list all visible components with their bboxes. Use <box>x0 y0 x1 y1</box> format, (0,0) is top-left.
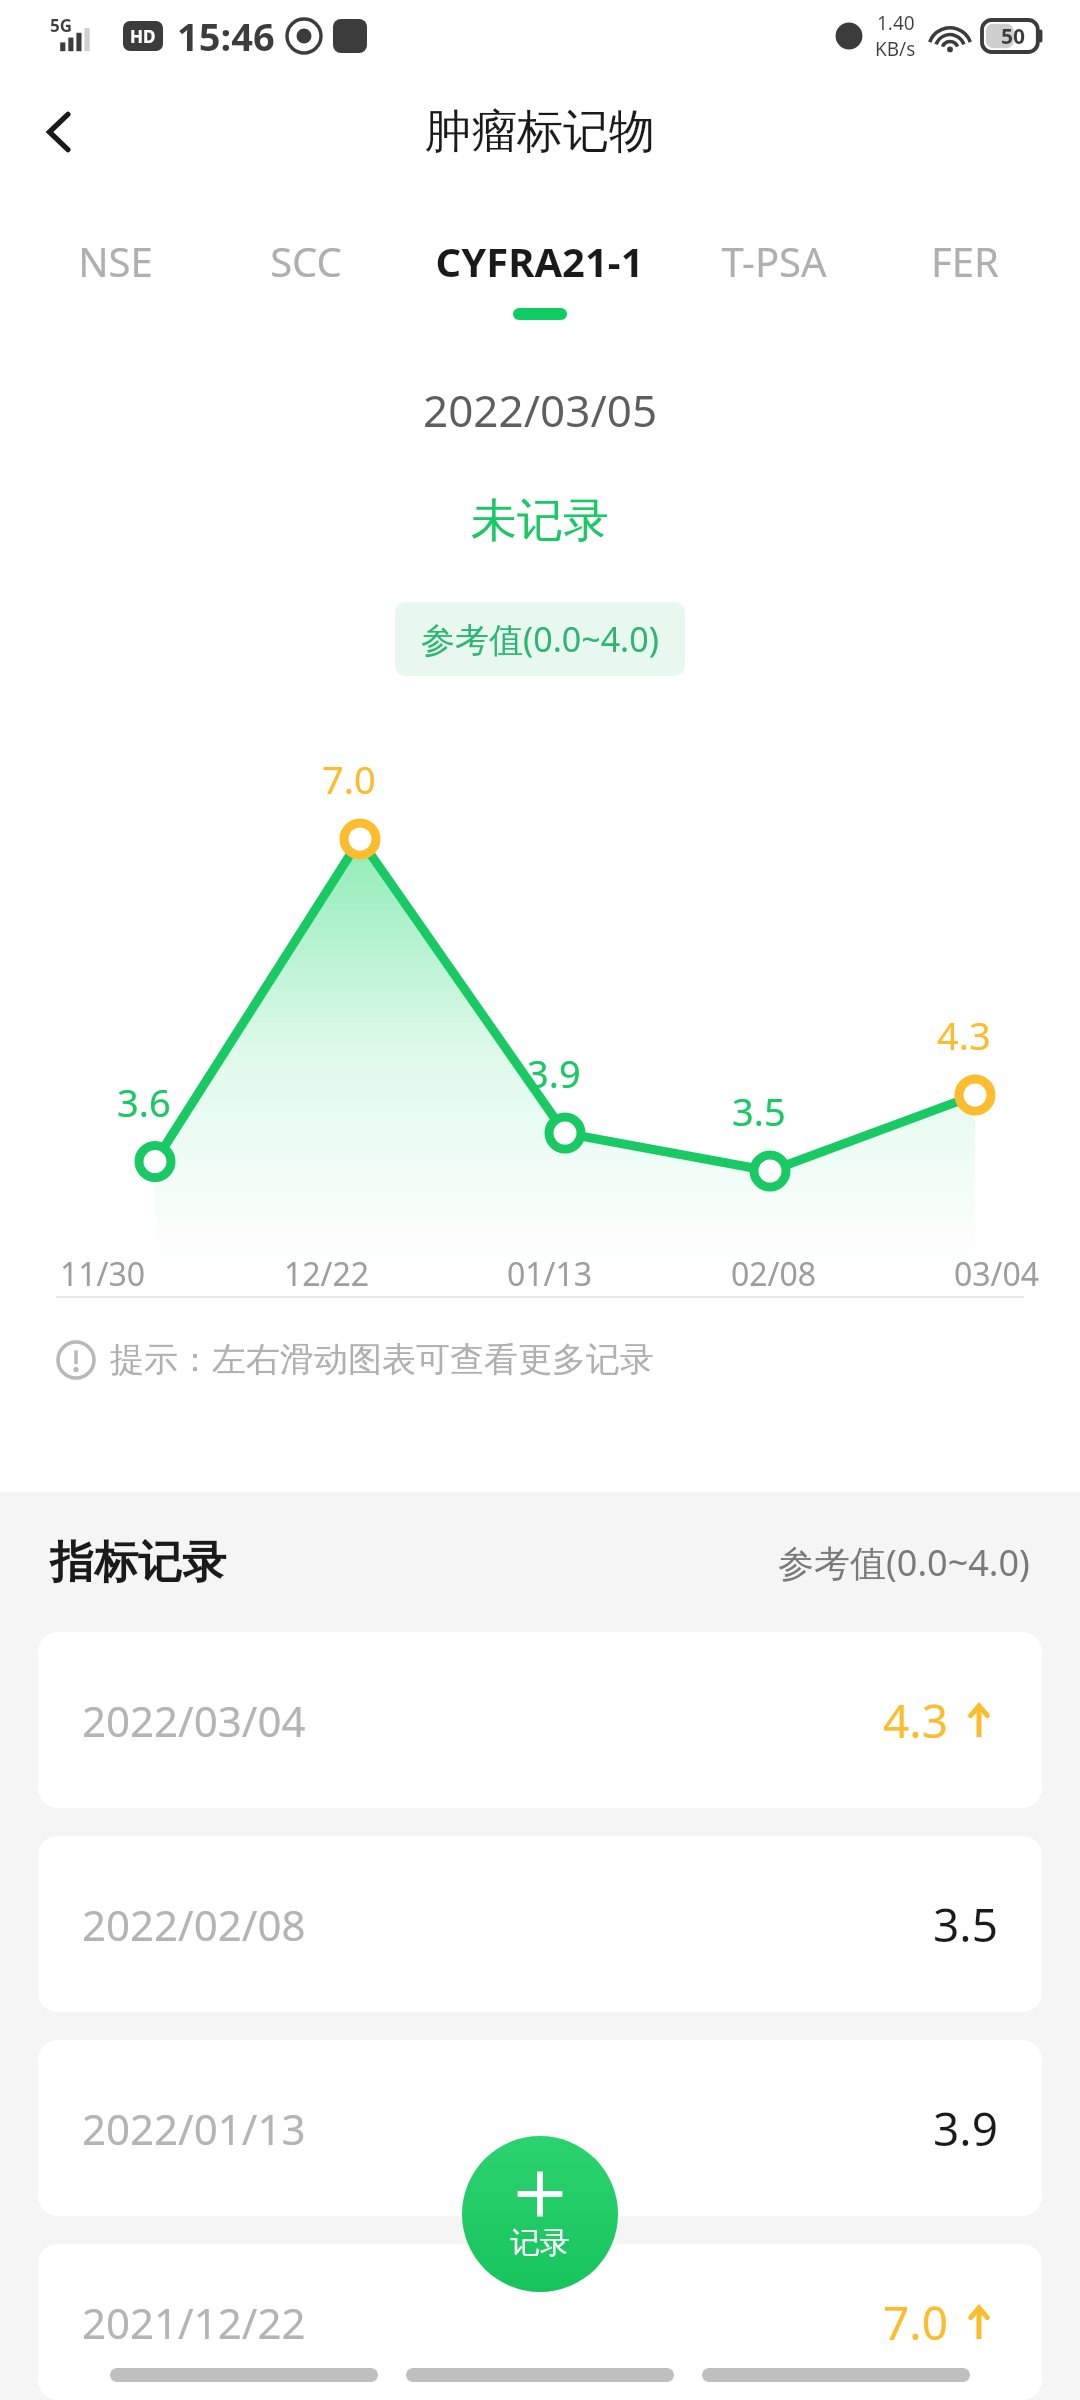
staticText: 提示：左右滑动图表可查看更多记录 <box>110 1338 654 1381</box>
staticText: 记录 <box>510 2224 570 2262</box>
staticText: KB/s <box>875 36 916 62</box>
staticText: 2022/02/08 <box>82 1896 306 1953</box>
staticText: SCC <box>270 234 342 288</box>
staticText: 2022/01/13 <box>82 2100 306 2157</box>
staticText: 03/04 <box>954 1252 1040 1296</box>
button[interactable]: T-PSA <box>678 192 869 332</box>
staticText: 3.5 <box>732 1085 786 1137</box>
button[interactable]: Back <box>0 72 120 192</box>
staticText: 指标记录 <box>50 1535 226 1590</box>
staticText: 12/22 <box>284 1252 370 1296</box>
button[interactable]: Navigation <box>110 2368 378 2382</box>
staticText: 2022/03/04 <box>82 1692 306 1749</box>
button[interactable]: CYFRA21-1 <box>401 192 678 332</box>
button[interactable]: 2022/03/04 <box>38 1632 1042 1808</box>
button[interactable]: NSE <box>20 192 210 332</box>
staticText: 2022/03/05 <box>423 380 658 440</box>
button[interactable]: SCC <box>210 192 401 332</box>
staticText: 02/08 <box>731 1252 817 1296</box>
staticText: 3.9 <box>527 1047 581 1099</box>
button[interactable]: 添加记录 <box>462 2136 618 2292</box>
staticText: 5G <box>50 14 73 37</box>
button[interactable]: 2022/01/13 <box>38 2040 1042 2216</box>
staticText: T-PSA <box>721 234 827 288</box>
staticText: 3.9 <box>933 2097 998 2160</box>
staticText: 2021/12/22 <box>82 2294 306 2351</box>
staticText: 未记录 <box>471 492 609 550</box>
button[interactable]: FER <box>869 192 1060 332</box>
button[interactable]: 2022/02/08 <box>38 1836 1042 2012</box>
button[interactable]: 2021/12/22 <box>38 2244 1042 2400</box>
staticText: 4.3 <box>883 1689 948 1752</box>
staticText: HD <box>130 25 156 48</box>
staticText: 11/30 <box>60 1252 146 1296</box>
staticText: 50 <box>1001 22 1026 51</box>
staticText: 7.0 <box>883 2291 948 2354</box>
staticText: 01/13 <box>507 1252 593 1296</box>
staticText: FER <box>931 234 999 288</box>
button[interactable]: Navigation <box>406 2368 674 2382</box>
staticText: 7.0 <box>322 753 376 805</box>
staticText: CYFRA21-1 <box>435 234 644 288</box>
button[interactable]: 参考值(0.0~4.0) <box>421 616 659 662</box>
button[interactable]: Navigation <box>702 2368 970 2382</box>
staticText: 参考值(0.0~4.0) <box>421 616 659 662</box>
staticText: 肿瘤标记物 <box>425 103 655 161</box>
staticText: 15:46 <box>177 10 275 62</box>
staticText: 3.6 <box>117 1076 171 1128</box>
staticText: 参考值(0.0~4.0) <box>778 1538 1030 1587</box>
staticText: 1.40 <box>877 10 915 36</box>
staticText: NSE <box>78 234 153 288</box>
staticText: 3.5 <box>933 1893 998 1956</box>
staticText: 4.3 <box>937 1009 991 1061</box>
